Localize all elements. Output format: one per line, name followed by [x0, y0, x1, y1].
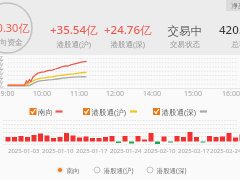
button[interactable]	[0, 0, 240, 180]
